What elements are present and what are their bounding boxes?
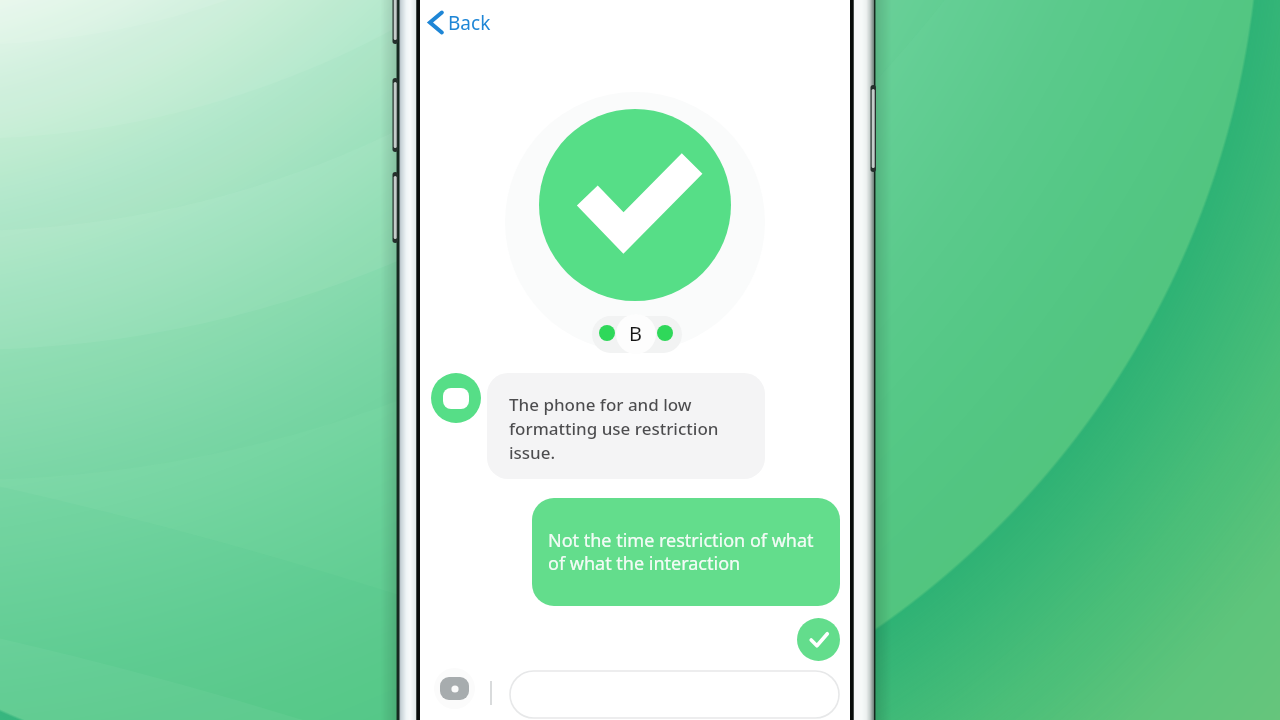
- button[interactable]: Camera: [434, 668, 475, 709]
- button[interactable]: Message delivered: [797, 618, 840, 661]
- staticText: Back: [448, 10, 491, 36]
- staticText: B: [629, 320, 642, 347]
- button[interactable]: The phone for and low formatting use res…: [487, 373, 765, 479]
- button[interactable]: Not the time restriction of what of what…: [532, 498, 840, 606]
- button[interactable]: Contact avatar: [431, 373, 481, 423]
- staticText: Not the time restriction of what of what…: [548, 528, 814, 575]
- staticText: The phone for and low formatting use res…: [509, 393, 719, 464]
- button[interactable]: Back: [426, 0, 491, 45]
- button[interactable]: Message input: [510, 671, 839, 718]
